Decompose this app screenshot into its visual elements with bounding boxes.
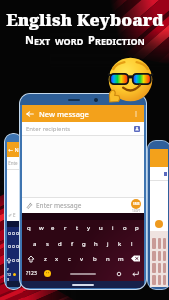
button[interactable]: z bbox=[39, 251, 51, 266]
button[interactable]: ?123 bbox=[22, 266, 40, 281]
staticText: o bbox=[12, 230, 16, 237]
staticText: z bbox=[44, 255, 47, 263]
staticText: y bbox=[87, 224, 91, 232]
button[interactable]: n bbox=[101, 251, 114, 266]
staticText: Enter message bbox=[36, 201, 82, 210]
staticText: p bbox=[135, 224, 139, 232]
staticText: New message bbox=[39, 109, 89, 119]
staticText: o bbox=[16, 230, 20, 237]
button[interactable]: y bbox=[83, 220, 95, 236]
staticText: o o bbox=[12, 257, 20, 264]
staticText: d bbox=[58, 240, 62, 248]
button[interactable]: e bbox=[47, 220, 59, 236]
staticText: k bbox=[118, 240, 122, 248]
staticText: English Keyboard bbox=[6, 8, 164, 31]
staticText: ?123 bbox=[7, 267, 12, 281]
button[interactable] bbox=[54, 266, 112, 281]
staticText: Enter recipients bbox=[26, 125, 71, 133]
button[interactable]: c bbox=[63, 251, 75, 266]
button[interactable]: Emoji keyboard bbox=[40, 266, 54, 281]
staticText: r bbox=[64, 224, 67, 232]
staticText: SMS bbox=[133, 202, 140, 206]
button[interactable]: r bbox=[59, 220, 71, 236]
button[interactable]: d bbox=[54, 236, 66, 251]
staticText: m bbox=[118, 255, 124, 263]
other: Emoji bbox=[108, 57, 153, 102]
button[interactable]: b bbox=[88, 251, 101, 266]
staticText: o bbox=[123, 224, 127, 232]
staticText: 140/1 bbox=[132, 209, 141, 213]
staticText: o bbox=[12, 243, 16, 250]
staticText: o bbox=[8, 243, 12, 250]
staticText: l bbox=[131, 240, 133, 248]
button[interactable]: Settings bbox=[112, 266, 126, 281]
button[interactable]: t bbox=[71, 220, 83, 236]
button[interactable]: q bbox=[23, 220, 35, 236]
button[interactable]: Backspace bbox=[127, 251, 144, 266]
button[interactable]: p bbox=[131, 220, 143, 236]
staticText: WORD bbox=[55, 35, 84, 47]
other: More options bbox=[132, 110, 140, 118]
staticText: ?123 bbox=[26, 270, 37, 277]
button[interactable]: k bbox=[114, 236, 126, 251]
other: Contacts bbox=[134, 126, 140, 132]
staticText: EXT bbox=[34, 35, 51, 47]
staticText: o bbox=[16, 243, 20, 250]
staticText: j bbox=[107, 240, 109, 248]
staticText: n bbox=[106, 255, 110, 263]
staticText: s bbox=[46, 240, 49, 248]
staticText: i bbox=[112, 224, 114, 232]
staticText: f bbox=[71, 240, 74, 248]
button[interactable]: Back bbox=[22, 105, 144, 122]
staticText: x bbox=[55, 255, 59, 263]
staticText: w bbox=[39, 224, 44, 232]
staticText: e bbox=[51, 224, 55, 232]
button[interactable]: x bbox=[51, 251, 63, 266]
button[interactable]: o bbox=[119, 220, 131, 236]
staticText: q bbox=[27, 224, 31, 232]
button[interactable]: v bbox=[75, 251, 88, 266]
button[interactable]: g bbox=[78, 236, 90, 251]
staticText: o bbox=[8, 230, 12, 237]
button[interactable]: u bbox=[95, 220, 107, 236]
staticText: h bbox=[94, 240, 98, 248]
staticText: REDICTION bbox=[95, 35, 145, 47]
button[interactable]: Shift bbox=[22, 251, 39, 266]
staticText: ✐ E bbox=[7, 212, 16, 218]
button[interactable]: a bbox=[28, 236, 41, 251]
staticText: N bbox=[25, 32, 34, 47]
button[interactable]: f bbox=[66, 236, 78, 251]
staticText: ← N bbox=[7, 146, 19, 153]
button[interactable]: l bbox=[126, 236, 138, 251]
other: Back bbox=[26, 110, 34, 118]
staticText: u bbox=[99, 224, 103, 232]
staticText: g bbox=[82, 240, 86, 248]
staticText: b bbox=[93, 255, 97, 263]
button[interactable]: s bbox=[41, 236, 54, 251]
staticText: t bbox=[76, 224, 79, 232]
other: Attach bbox=[25, 202, 32, 209]
button[interactable]: i bbox=[107, 220, 119, 236]
button[interactable]: Attach bbox=[22, 198, 144, 213]
staticText: c bbox=[68, 255, 71, 263]
staticText: a bbox=[33, 240, 37, 248]
button[interactable]: m bbox=[114, 251, 127, 266]
staticText: P bbox=[88, 32, 95, 47]
button[interactable]: Enter recipients bbox=[22, 122, 144, 135]
button[interactable]: j bbox=[102, 236, 114, 251]
button[interactable]: w bbox=[35, 220, 47, 236]
button[interactable]: SMS bbox=[131, 199, 141, 209]
button[interactable]: h bbox=[90, 236, 102, 251]
staticText: Ente bbox=[7, 160, 18, 166]
button[interactable]: Enter bbox=[126, 266, 144, 281]
staticText: v bbox=[80, 255, 84, 263]
